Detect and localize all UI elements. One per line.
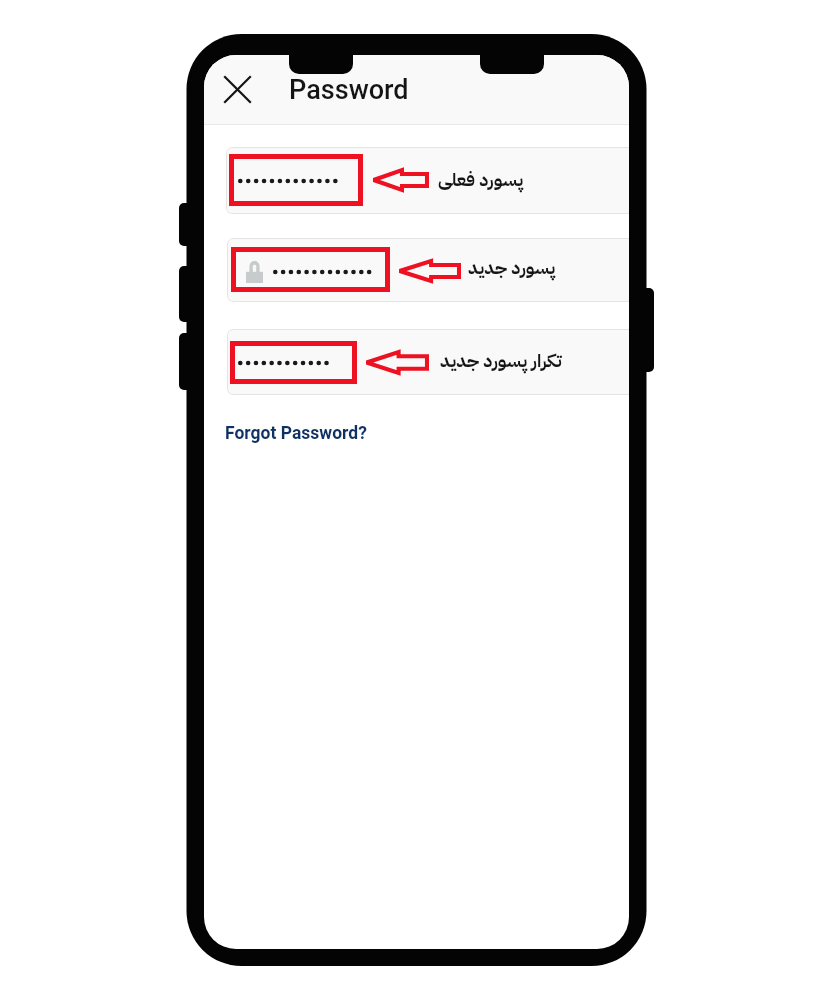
button[interactable]: Close — [213, 65, 260, 112]
staticText: Password — [289, 74, 409, 106]
button[interactable]: Forgot Password? — [225, 423, 367, 444]
staticText: پسورد جدید — [468, 254, 556, 281]
button[interactable]: Repeat new password field — [227, 329, 629, 395]
staticText: پسورد فعلی — [438, 166, 524, 193]
staticText: Forgot Password? — [225, 423, 367, 444]
staticText: تکرار پسورد جدید — [440, 347, 562, 374]
button[interactable]: Current password field — [226, 147, 629, 214]
button[interactable]: New password field — [227, 238, 629, 302]
